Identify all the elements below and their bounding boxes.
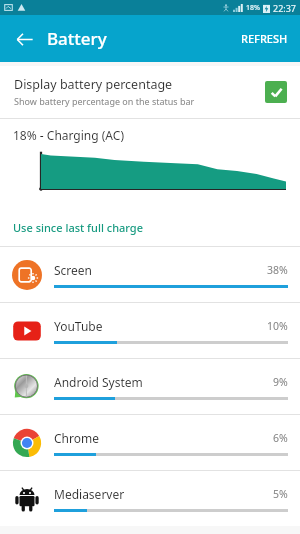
- staticText: 38%: [267, 263, 288, 277]
- staticText: Battery: [47, 27, 107, 50]
- button[interactable]: Chrome: [0, 415, 300, 470]
- staticText: 10%: [267, 319, 288, 333]
- button[interactable]: Display battery percentage checkbox: [265, 81, 287, 103]
- button[interactable]: Back: [8, 23, 40, 55]
- staticText: Use since last full charge: [13, 220, 143, 235]
- button[interactable]: Display battery percentage: [0, 66, 300, 118]
- button[interactable]: Mediaserver: [0, 471, 300, 526]
- staticText: REFRESH: [241, 31, 288, 46]
- button[interactable]: YouTube: [0, 303, 300, 358]
- staticText: 22:37: [273, 2, 297, 14]
- staticText: Screen: [54, 262, 93, 278]
- staticText: Show battery percentage on the status ba…: [14, 95, 195, 107]
- button[interactable]: Use since last full charge: [0, 212, 300, 246]
- button[interactable]: Screen: [0, 247, 300, 302]
- staticText: 9%: [273, 375, 288, 389]
- staticText: Chrome: [54, 430, 99, 446]
- staticText: Mediaserver: [54, 486, 125, 502]
- staticText: Display battery percentage: [14, 76, 173, 93]
- staticText: YouTube: [54, 318, 103, 334]
- button[interactable]: REFRESH: [231, 25, 298, 52]
- staticText: 18%: [246, 3, 260, 13]
- staticText: 5%: [273, 487, 288, 501]
- staticText: Android System: [54, 374, 143, 390]
- staticText: 6%: [273, 431, 288, 445]
- button[interactable]: Android System: [0, 359, 300, 414]
- staticText: 18% - Charging (AC): [13, 127, 124, 143]
